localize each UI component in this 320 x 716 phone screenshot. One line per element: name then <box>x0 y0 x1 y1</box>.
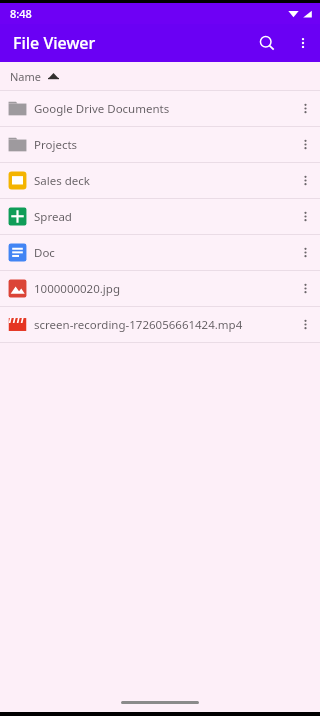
staticText: screen-recording-1726056661424.mp4 <box>34 317 290 333</box>
staticText: Sales deck <box>34 173 290 189</box>
button[interactable]: Name <box>0 62 320 90</box>
staticText: 1000000020.jpg <box>34 281 290 297</box>
staticText: File Viewer <box>13 32 96 54</box>
button[interactable]: More options for Spread <box>290 199 320 234</box>
staticText: Doc <box>34 245 290 261</box>
staticText: Spread <box>34 209 290 225</box>
button[interactable]: More options for screen-recording-172605… <box>290 307 320 342</box>
button[interactable]: Sales deck <box>0 163 320 198</box>
button[interactable]: Spread <box>0 199 320 234</box>
button[interactable]: screen-recording-1726056661424.mp4 <box>0 307 320 342</box>
staticText: 8:48 <box>10 6 32 21</box>
staticText: Google Drive Documents <box>34 101 290 117</box>
button[interactable]: Doc <box>0 235 320 270</box>
button[interactable]: Search <box>248 24 286 62</box>
button[interactable]: More options for Sales deck <box>290 163 320 198</box>
button[interactable]: Projects <box>0 127 320 162</box>
button[interactable]: More options for Doc <box>290 235 320 270</box>
staticText: Projects <box>34 137 290 153</box>
button[interactable]: More options for 1000000020.jpg <box>290 271 320 306</box>
button[interactable]: More options <box>286 26 320 60</box>
staticText: Name <box>10 69 42 84</box>
button[interactable]: More options for Projects <box>290 127 320 162</box>
button[interactable]: Google Drive Documents <box>0 91 320 126</box>
button[interactable]: 1000000020.jpg <box>0 271 320 306</box>
button[interactable]: More options for Google Drive Documents <box>290 91 320 126</box>
